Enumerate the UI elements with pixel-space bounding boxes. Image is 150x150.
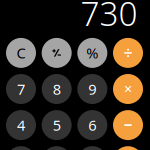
- button[interactable]: 7: [6, 74, 36, 104]
- button[interactable]: 5: [42, 110, 72, 140]
- staticText: 8: [53, 79, 61, 99]
- button[interactable]: 6: [77, 110, 107, 140]
- staticText: C: [16, 43, 25, 63]
- staticText: 7: [17, 79, 25, 99]
- button[interactable]: %: [77, 38, 107, 68]
- button[interactable]: 8: [42, 74, 72, 104]
- button[interactable]: 2: [42, 146, 72, 150]
- button[interactable]: C: [6, 38, 36, 68]
- staticText: 4: [17, 115, 25, 135]
- staticText: 9: [88, 79, 96, 99]
- staticText: 5: [53, 115, 61, 135]
- button[interactable]: Multiply: [113, 74, 143, 104]
- button[interactable]: 1: [6, 146, 36, 150]
- staticText: %: [86, 43, 98, 63]
- button[interactable]: 4: [6, 110, 36, 140]
- button[interactable]: Plus Minus: [42, 38, 72, 68]
- button[interactable]: Plus: [113, 146, 143, 150]
- button[interactable]: 9: [77, 74, 107, 104]
- button[interactable]: Minus: [113, 110, 143, 140]
- button[interactable]: 3: [77, 146, 107, 150]
- staticText: 6: [88, 115, 96, 135]
- staticText: 730: [80, 0, 137, 35]
- button[interactable]: Divide: [113, 38, 143, 68]
